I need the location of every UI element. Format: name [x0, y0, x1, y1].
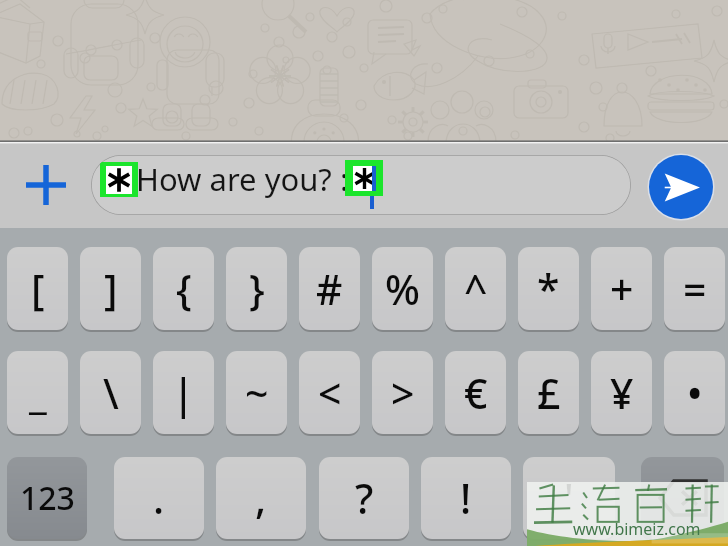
- staticText: ]: [104, 261, 118, 317]
- button[interactable]: |: [153, 351, 214, 434]
- button[interactable]: ^: [445, 247, 506, 330]
- staticText: {: [176, 261, 192, 317]
- staticText: *: [537, 261, 560, 317]
- staticText: =: [683, 261, 707, 317]
- button[interactable]: *: [518, 247, 579, 330]
- staticText: %: [385, 261, 420, 317]
- button[interactable]: {: [153, 247, 214, 330]
- button[interactable]: Backspace: [641, 457, 724, 539]
- button[interactable]: }: [226, 247, 287, 330]
- staticText: €: [464, 365, 488, 421]
- button[interactable]: •: [664, 351, 725, 434]
- staticText: •: [687, 365, 703, 421]
- staticText: +: [610, 261, 634, 317]
- button[interactable]: ~: [226, 351, 287, 434]
- staticText: ~: [245, 365, 269, 421]
- staticText: ^: [464, 261, 488, 317]
- staticText: 123: [20, 476, 75, 520]
- button[interactable]: £: [518, 351, 579, 434]
- staticText: |: [172, 365, 195, 421]
- button[interactable]: =: [664, 247, 725, 330]
- button[interactable]: !: [421, 457, 511, 539]
- staticText: !: [460, 470, 472, 526]
- button[interactable]: \: [80, 351, 141, 434]
- button[interactable]: <: [299, 351, 360, 434]
- button[interactable]: ?: [319, 457, 409, 539]
- button[interactable]: How are you? :,: [91, 155, 631, 215]
- button[interactable]: [: [7, 247, 68, 330]
- button[interactable]: 123: [7, 457, 87, 539]
- button[interactable]: +: [591, 247, 652, 330]
- staticText: \: [103, 365, 119, 421]
- staticText: #: [316, 261, 343, 317]
- staticText: £: [537, 365, 561, 421]
- staticText: ?: [355, 470, 374, 526]
- button[interactable]: #: [299, 247, 360, 330]
- button[interactable]: ': [523, 457, 615, 539]
- staticText: <: [318, 365, 342, 421]
- button[interactable]: €: [445, 351, 506, 434]
- button[interactable]: ]: [80, 247, 141, 330]
- button[interactable]: Add attachment: [20, 159, 72, 211]
- button[interactable]: _: [7, 351, 68, 434]
- staticText: }: [249, 261, 265, 317]
- button[interactable]: Send message: [646, 152, 716, 222]
- staticText: _: [29, 365, 47, 421]
- button[interactable]: %: [372, 247, 433, 330]
- button[interactable]: ,: [216, 457, 306, 539]
- staticText: www.bimeiz.com: [573, 518, 701, 540]
- staticText: ¥: [610, 365, 634, 421]
- button[interactable]: ¥: [591, 351, 652, 434]
- staticText: ,: [255, 470, 267, 526]
- staticText: >: [391, 365, 415, 421]
- staticText: ': [564, 470, 574, 526]
- staticText: How are you? :,: [136, 158, 357, 200]
- button[interactable]: >: [372, 351, 433, 434]
- staticText: .: [153, 470, 165, 526]
- staticText: [: [31, 261, 45, 317]
- button[interactable]: .: [114, 457, 204, 539]
